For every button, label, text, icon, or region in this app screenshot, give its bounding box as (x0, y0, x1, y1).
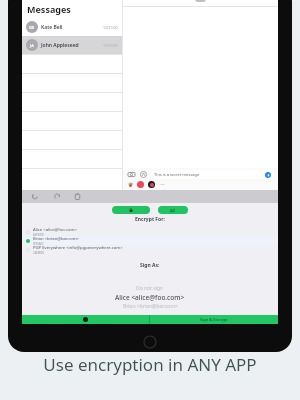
button[interactable]: Brian <brian@bar.com> (22, 236, 278, 245)
staticText: Kate Bell (41, 24, 63, 31)
staticText: 12/31/00 (103, 43, 118, 48)
staticText: AZ (170, 208, 176, 213)
button[interactable]: Redo (51, 191, 62, 202)
button[interactable]: JA (22, 36, 122, 54)
button[interactable]: Paste (72, 191, 83, 202)
staticText: Do not sign (136, 285, 164, 292)
staticText: JA (30, 43, 34, 48)
button[interactable]: Camera (127, 170, 136, 179)
button[interactable]: Sign & Encrypt (150, 315, 278, 324)
button[interactable]: More apps (159, 181, 166, 188)
staticText: Sign As: (140, 262, 160, 269)
button[interactable]: PGP Everywhere <info@pgpeverywhere.com> (22, 245, 278, 254)
staticText: This is a secret message (154, 172, 200, 177)
staticText: KB (29, 25, 35, 30)
staticText: Sign & Encrypt (200, 317, 228, 322)
staticText: Messages (27, 3, 71, 15)
staticText: Alice <alice@foo.com> (33, 227, 77, 233)
staticText: Alice <alice@foo.com> (115, 293, 185, 302)
staticText: 9F55A0C (33, 242, 44, 245)
staticText: Use encryption in ANY APP (43, 353, 257, 376)
staticText: PGP Everywhere <info@pgpeverywhere.com> (33, 245, 123, 251)
button[interactable]: Send (265, 172, 271, 178)
button[interactable]: Alice <alice@foo.com> (22, 227, 278, 236)
button[interactable]: Encrypt (112, 206, 150, 214)
button[interactable]: KB (22, 18, 122, 36)
staticText: Brian <brian@bar.com> (123, 303, 178, 310)
button[interactable]: Home (143, 335, 157, 349)
staticText: A5F37E8 (33, 233, 44, 236)
button[interactable]: Keyboard switcher (22, 315, 149, 324)
staticText: Encrypt For: (135, 216, 165, 223)
button[interactable]: App store (139, 170, 148, 179)
staticText: 12/31/00 (103, 25, 118, 30)
button[interactable]: Photos app (128, 182, 133, 187)
button[interactable]: Music app (137, 181, 144, 188)
staticText: 1AF4E0D (33, 251, 44, 254)
button[interactable]: AZ (158, 206, 188, 214)
staticText: John Appleseed (41, 42, 79, 49)
button[interactable]: This is a secret message (151, 170, 274, 179)
staticText: Brian <brian@bar.com> (33, 236, 79, 242)
button[interactable]: Do not sign (22, 285, 278, 310)
button[interactable]: Undo (30, 191, 41, 202)
button[interactable]: App (148, 181, 155, 188)
